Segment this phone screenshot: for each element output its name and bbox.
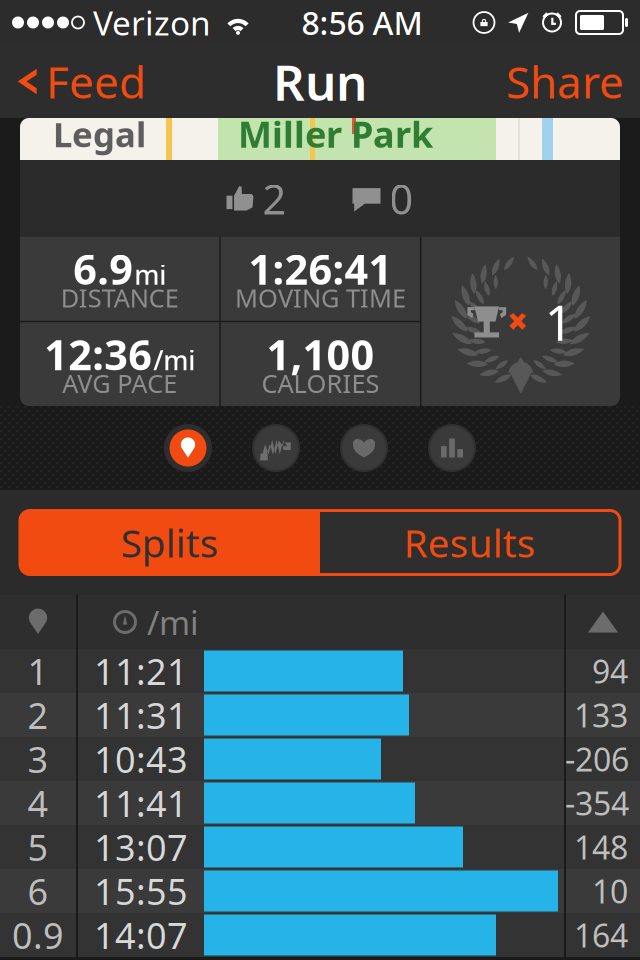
staticText: 1,100: [266, 327, 374, 382]
staticText: 1: [545, 289, 573, 354]
staticText: Legal: [53, 111, 146, 157]
button[interactable]: Feed: [0, 45, 158, 118]
staticText: 2: [27, 691, 48, 739]
staticText: Miller Park: [238, 110, 433, 158]
staticText: -354: [565, 782, 629, 824]
staticText: 1:26:41: [248, 241, 392, 296]
button[interactable]: 0: [340, 160, 425, 237]
staticText: /mi: [153, 342, 195, 378]
button[interactable]: Analysis: [250, 422, 302, 474]
staticText: Verizon: [93, 0, 211, 45]
staticText: 14:07: [94, 911, 188, 959]
staticText: Feed: [46, 52, 146, 111]
button[interactable]: Map: [162, 422, 214, 474]
staticText: 13:07: [94, 823, 188, 871]
staticText: 148: [574, 826, 628, 868]
staticText: Run: [273, 49, 367, 114]
staticText: Splits: [121, 517, 219, 568]
staticText: 4: [27, 779, 48, 827]
staticText: 12:36: [44, 327, 152, 382]
staticText: Share: [506, 52, 624, 111]
button[interactable]: Charts: [426, 422, 478, 474]
button[interactable]: Share: [490, 45, 640, 118]
staticText: 2: [262, 171, 286, 226]
button[interactable]: 2: [214, 160, 298, 237]
staticText: 10: [592, 870, 628, 912]
button[interactable]: Heart rate: [338, 422, 390, 474]
staticText: DISTANCE: [61, 281, 179, 314]
staticText: /mi: [147, 600, 199, 644]
staticText: 11:31: [94, 691, 188, 739]
staticText: 6.9: [73, 241, 133, 296]
staticText: 8:56 AM: [301, 1, 422, 44]
staticText: mi: [134, 257, 166, 292]
staticText: 0.9: [12, 911, 64, 959]
staticText: 164: [574, 914, 628, 956]
staticText: 6: [27, 867, 48, 915]
staticText: MOVING TIME: [235, 281, 406, 314]
staticText: 1: [27, 647, 48, 695]
staticText: -206: [565, 738, 629, 780]
staticText: 94: [592, 650, 628, 692]
staticText: 5: [27, 823, 48, 871]
staticText: 0: [389, 171, 413, 226]
button[interactable]: Splits: [20, 510, 320, 574]
staticText: 15:55: [94, 867, 188, 915]
staticText: 10:43: [94, 735, 188, 783]
button[interactable]: Results: [320, 510, 620, 574]
staticText: Results: [404, 517, 536, 568]
staticText: 11:41: [94, 779, 188, 827]
staticText: 3: [27, 735, 48, 783]
staticText: 133: [574, 694, 628, 736]
staticText: CALORIES: [261, 366, 379, 400]
staticText: 11:21: [94, 647, 188, 695]
staticText: AVG PACE: [62, 366, 177, 400]
